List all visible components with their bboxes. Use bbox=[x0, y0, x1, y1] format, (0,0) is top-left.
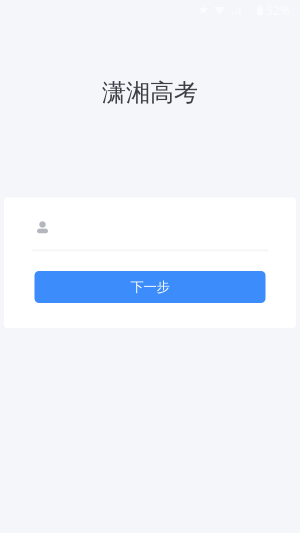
staticText: 下一步 bbox=[130, 279, 169, 295]
staticText: 潇湘高考 bbox=[102, 78, 198, 107]
button[interactable]: Account bbox=[4, 197, 296, 249]
button[interactable]: 下一步 bbox=[34, 271, 265, 303]
